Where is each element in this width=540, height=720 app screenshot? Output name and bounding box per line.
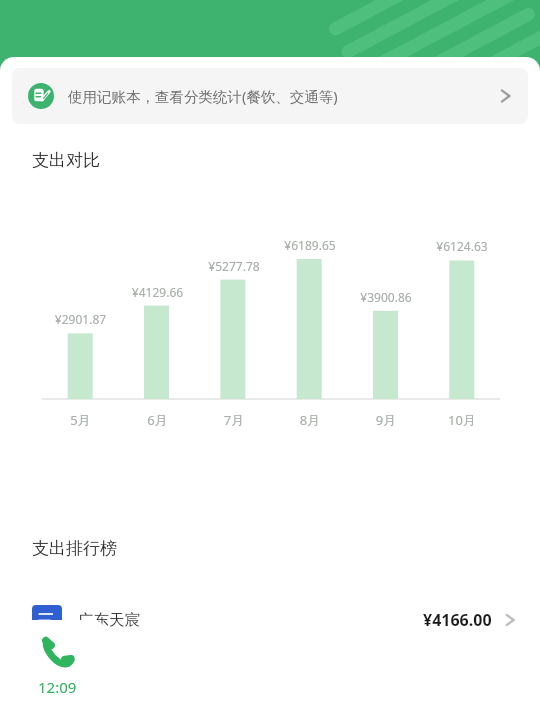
staticText: 6月: [119, 411, 196, 429]
staticText: 9月: [348, 411, 424, 429]
staticText: 广东天宸: [78, 610, 423, 630]
staticText: ¥4166.00: [423, 609, 492, 631]
staticText: ¥6124.63: [424, 238, 500, 254]
staticText: 使用记账本，查看分类统计(餐饮、交通等): [68, 86, 499, 106]
other: Open: [499, 86, 512, 106]
button[interactable]: Return to call: [10, 620, 105, 712]
staticText: 8月: [272, 411, 348, 429]
staticText: 支出排行榜: [32, 538, 117, 559]
staticText: ¥3900.86: [348, 289, 424, 305]
staticText: 5月: [42, 411, 119, 429]
staticText: ¥5277.78: [196, 258, 272, 274]
staticText: 10月: [424, 411, 500, 429]
button[interactable]: 广东天宸: [0, 587, 540, 653]
other: Open: [504, 611, 516, 629]
staticText: 12:09: [38, 677, 77, 697]
button[interactable]: 使用记账本，查看分类统计(餐饮、交通等): [12, 68, 528, 124]
staticText: ¥4129.66: [119, 284, 196, 300]
staticText: 支出对比: [32, 150, 100, 171]
staticText: ¥2901.87: [42, 311, 119, 327]
staticText: ¥6189.65: [272, 237, 348, 253]
staticText: 7月: [196, 411, 272, 429]
